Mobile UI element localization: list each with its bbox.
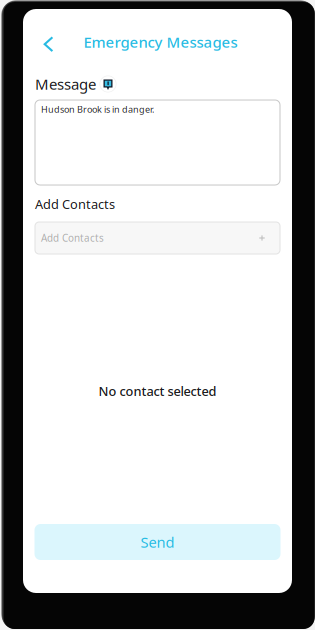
staticText: No contact selected bbox=[98, 382, 216, 400]
staticText: Add Contacts bbox=[35, 195, 115, 213]
staticText: Add Contacts bbox=[41, 231, 104, 245]
button[interactable]: Add Contacts bbox=[35, 222, 280, 254]
staticText: Send bbox=[140, 532, 174, 552]
button[interactable]: Back bbox=[34, 26, 64, 56]
staticText: Emergency Messages bbox=[83, 32, 237, 52]
staticText: Hudson Brook is in danger. bbox=[41, 103, 154, 115]
staticText: Message bbox=[35, 74, 96, 94]
button[interactable]: Send bbox=[34, 524, 280, 560]
